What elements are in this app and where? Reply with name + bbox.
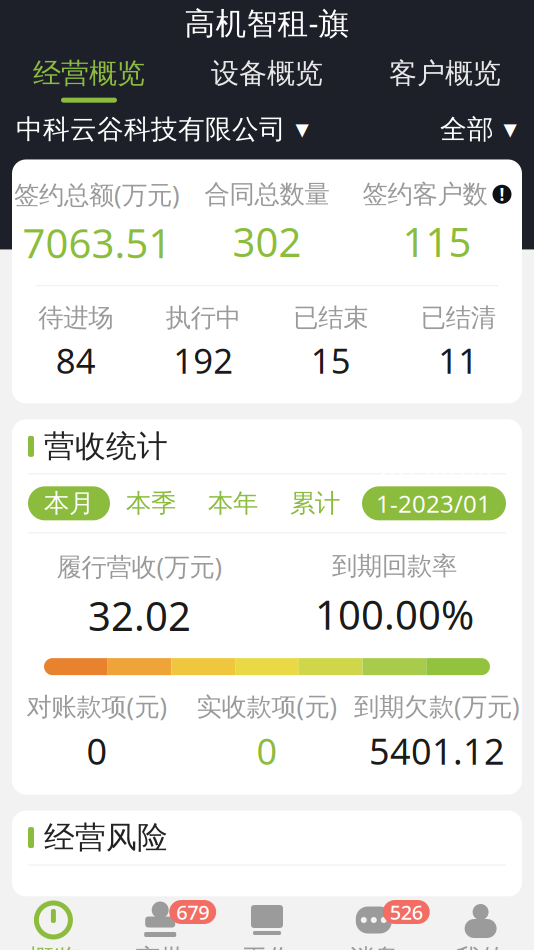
staticText: 待进场 <box>38 302 113 333</box>
staticText: 客户概览 <box>389 56 501 91</box>
staticText: 已结束 <box>293 302 368 333</box>
staticText: 全部 <box>440 113 494 146</box>
button[interactable]: 工作 <box>214 897 320 950</box>
staticText: 526 <box>390 899 423 925</box>
staticText: 115 <box>402 215 471 268</box>
staticText: 合同总数量 <box>204 179 329 210</box>
staticText: 实收款项(元) <box>196 689 337 723</box>
staticText: 84 <box>56 337 96 383</box>
staticText: 签约总额(万元) <box>14 177 180 211</box>
staticText: 签约客户数 <box>362 179 487 210</box>
staticText: 对账款项(元) <box>26 689 167 723</box>
staticText: 营收统计 <box>44 427 168 465</box>
staticText: 我的 <box>456 943 506 950</box>
staticText: 7063.51 <box>22 216 171 269</box>
staticText: 2023/01/01-2023/01/31 <box>376 455 492 551</box>
staticText: 经营风险 <box>44 819 168 856</box>
staticText: 302 <box>232 215 301 268</box>
button[interactable]: 2023/01/01-2023/01/31 <box>362 486 506 520</box>
staticText: 到期欠款(万元) <box>354 689 520 723</box>
staticText: 到期回款率 <box>332 551 457 582</box>
button[interactable]: 本年 <box>192 486 274 520</box>
staticText: 11 <box>438 337 478 383</box>
button[interactable]: 679 <box>107 897 214 950</box>
staticText: 工作 <box>242 943 292 950</box>
button[interactable]: 本月 <box>28 486 110 520</box>
staticText: 中科云谷科技有限公司 <box>16 113 286 146</box>
button[interactable]: 概览 <box>0 897 107 950</box>
staticText: 消息 <box>349 943 399 950</box>
staticText: 高机智租-旗 <box>184 2 349 43</box>
staticText: 经营概览 <box>33 56 145 91</box>
button[interactable]: 中科云谷科技有限公司 <box>16 113 310 146</box>
staticText: 15 <box>311 337 351 383</box>
button[interactable]: 设备概览 <box>178 56 356 103</box>
staticText: ▼ <box>503 120 516 139</box>
staticText: 192 <box>173 337 233 383</box>
staticText: 5401.12 <box>369 727 505 775</box>
staticText: 审批 <box>135 943 185 950</box>
button[interactable]: 全部 <box>440 113 518 146</box>
staticText: 100.00% <box>315 588 474 641</box>
staticText: ! <box>499 183 504 206</box>
staticText: 本季 <box>126 488 176 519</box>
staticText: 履行营收(万元) <box>56 549 222 583</box>
staticText: 本年 <box>208 488 258 519</box>
staticText: 679 <box>176 899 209 925</box>
staticText: 0 <box>86 727 107 775</box>
staticText: ▼ <box>295 120 308 139</box>
button[interactable]: 累计 <box>274 486 356 520</box>
staticText: 执行中 <box>166 302 241 333</box>
button[interactable]: 客户概览 <box>356 56 534 103</box>
staticText: 0 <box>256 727 277 775</box>
staticText: 32.02 <box>88 589 191 642</box>
button[interactable]: 我的 <box>427 897 534 950</box>
staticText: 已结清 <box>421 302 496 333</box>
button[interactable]: 经营概览 <box>0 56 178 103</box>
staticText: 累计 <box>290 488 340 519</box>
button[interactable]: 本季 <box>110 486 192 520</box>
staticText: 设备概览 <box>211 56 323 91</box>
button[interactable]: 526 <box>320 897 427 950</box>
staticText: 本月 <box>44 488 94 519</box>
staticText: 概览 <box>28 943 78 950</box>
